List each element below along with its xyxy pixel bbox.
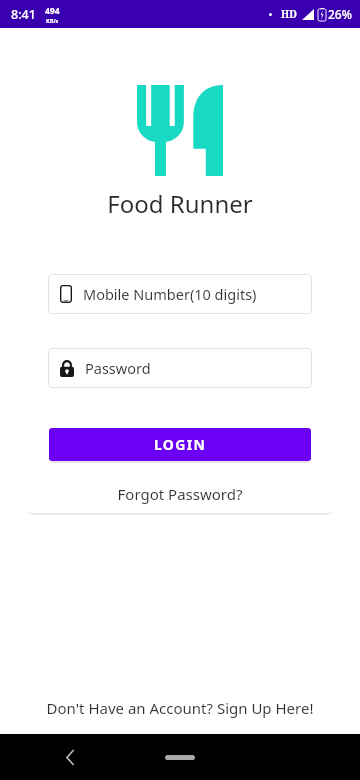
staticText: KB/s [46,17,59,24]
staticText: Password [85,358,151,378]
staticText: HD [281,7,297,21]
button[interactable]: Forgot Password? [24,482,336,506]
button[interactable]: Password field [48,348,312,388]
staticText: 8:41 [11,6,36,23]
button[interactable]: Home [153,744,207,770]
staticText: Mobile Number(10 digits) [83,284,257,304]
button[interactable]: Don't Have an Account? Sign Up Here! [0,692,360,724]
button[interactable]: LOGIN [49,428,311,461]
button[interactable]: Mobile number field [48,274,312,314]
staticText: 494 [45,5,60,17]
staticText: LOGIN [154,435,207,454]
button[interactable]: Back [57,744,83,770]
staticText: Food Runner [0,187,360,220]
staticText: 26% [328,6,352,22]
